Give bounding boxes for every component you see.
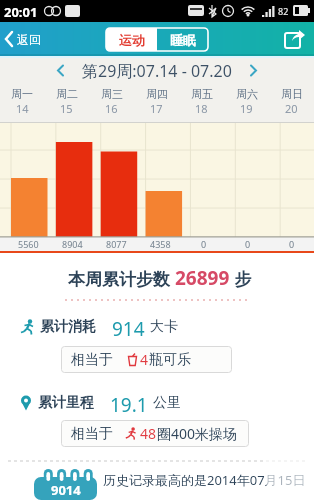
staticText: 大卡	[150, 318, 178, 336]
staticText: 14	[16, 101, 29, 116]
button[interactable]: 运动	[106, 28, 157, 51]
button[interactable]: 周四	[134, 84, 179, 122]
staticText: 本周累计步数	[68, 267, 175, 290]
button[interactable]	[244, 59, 263, 82]
staticText: 8077	[106, 238, 127, 250]
staticText: 19.1	[110, 392, 148, 414]
staticText: 运动	[119, 32, 145, 48]
staticText: 周五	[191, 87, 213, 101]
button[interactable]: 周二	[44, 84, 89, 122]
staticText: 周三	[101, 87, 123, 101]
staticText: 周四	[146, 87, 168, 101]
staticText: 20:01	[4, 3, 38, 21]
staticText: 9014	[51, 481, 81, 499]
staticText: 累计消耗	[40, 318, 96, 336]
staticText: 914	[112, 316, 145, 338]
button[interactable]: 周六	[224, 84, 269, 122]
staticText: 16	[105, 101, 118, 116]
staticText: 17	[150, 101, 163, 116]
button[interactable]: 周一	[0, 84, 44, 122]
button[interactable]: 周五	[179, 84, 224, 122]
staticText: 相当于	[71, 351, 113, 369]
staticText: 周一	[11, 87, 33, 101]
staticText: 返回	[17, 32, 41, 47]
staticText: 相当于	[71, 425, 113, 443]
staticText: 睡眠	[170, 32, 196, 48]
staticText: 4	[140, 350, 149, 369]
staticText: 第29周:07.14 - 07.20	[82, 60, 232, 82]
staticText: 公里	[153, 394, 181, 412]
staticText: 8904	[62, 238, 83, 250]
staticText: 圈400米操场	[157, 424, 238, 443]
staticText: 26899	[175, 265, 230, 291]
staticText: 周日	[281, 87, 303, 101]
button[interactable]	[51, 59, 70, 82]
button[interactable]: 相当于	[61, 420, 249, 447]
staticText: 周六	[236, 87, 258, 101]
staticText: 0	[245, 238, 251, 250]
button[interactable]: 返回	[0, 25, 47, 53]
staticText: 历史记录最高的是2014年07月15日	[103, 471, 306, 489]
staticText: 18	[195, 101, 208, 116]
staticText: 48	[140, 424, 157, 443]
button[interactable]	[282, 26, 308, 52]
staticText: 0	[289, 238, 295, 250]
staticText: 19	[240, 101, 253, 116]
staticText: 周二	[56, 87, 78, 101]
staticText: 累计里程	[38, 394, 94, 412]
button[interactable]: 周三	[89, 84, 134, 122]
staticText: 瓶可乐	[149, 351, 191, 369]
staticText: 5560	[18, 238, 39, 250]
button[interactable]: 睡眠	[157, 28, 208, 51]
button[interactable]: 周日	[269, 84, 314, 122]
staticText: 82	[278, 5, 289, 17]
staticText: 20	[285, 101, 298, 116]
staticText: 4358	[150, 238, 171, 250]
staticText: 步	[230, 267, 252, 290]
staticText: 0	[201, 238, 207, 250]
staticText: 15	[60, 101, 73, 116]
button[interactable]: 相当于	[61, 346, 232, 373]
